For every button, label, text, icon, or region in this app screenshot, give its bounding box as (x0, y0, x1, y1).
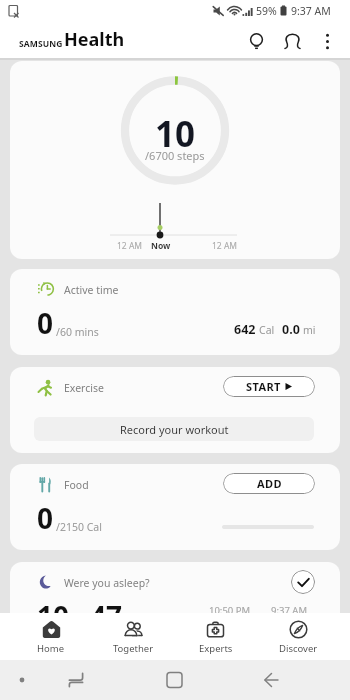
staticText: 10 (155, 110, 196, 158)
staticText: Food (64, 478, 89, 492)
button[interactable]: Discover (257, 613, 340, 660)
staticText: min (125, 618, 145, 632)
button[interactable]: Together (92, 613, 174, 660)
button[interactable]: ADD (223, 473, 315, 494)
button[interactable]: Food (10, 464, 340, 550)
staticText: /60 mins (56, 325, 99, 339)
staticText: Active time (64, 283, 119, 297)
staticText: Together (113, 642, 154, 655)
staticText: 0.0 (282, 321, 300, 338)
staticText: Cal (259, 323, 275, 337)
button[interactable]: START (223, 376, 315, 397)
staticText: /2150 Cal (56, 520, 102, 534)
staticText: Now (151, 240, 171, 252)
staticText: 642 (234, 321, 256, 338)
staticText: SAMSUNG (19, 38, 63, 50)
button[interactable]: Were you asleep? (10, 562, 340, 648)
staticText: 9:37 AM (271, 604, 308, 617)
button[interactable]: Tips (238, 23, 274, 59)
staticText: Record your workout (120, 422, 229, 437)
staticText: 0 (37, 304, 54, 342)
button[interactable]: Confirm sleep (291, 570, 315, 594)
staticText: mi (303, 323, 316, 337)
staticText: 59% (256, 4, 277, 18)
staticText: Home (37, 642, 65, 655)
button[interactable]: Experts (174, 613, 257, 660)
staticText: /6700 steps (145, 148, 205, 163)
button[interactable]: Profile (274, 23, 310, 59)
staticText: 0 (37, 499, 54, 537)
staticText: 10:50 PM (209, 604, 251, 617)
button[interactable]: Active time (10, 269, 340, 355)
button[interactable]: Exercise (10, 367, 340, 453)
staticText: Discover (279, 642, 318, 655)
staticText: START (246, 379, 281, 394)
staticText: Health (64, 27, 125, 52)
button[interactable]: Record your workout (34, 417, 314, 441)
staticText: 12 AM (117, 240, 143, 252)
staticText: ADD (257, 476, 282, 491)
button[interactable]: More options (310, 24, 344, 58)
staticText: Exercise (64, 381, 104, 395)
staticText: 9:37 AM (291, 4, 331, 18)
staticText: Were you asleep? (64, 576, 150, 590)
staticText: 12 AM (212, 240, 238, 252)
staticText: 47 (90, 597, 123, 635)
staticText: Experts (199, 642, 233, 655)
button[interactable]: Home (10, 613, 92, 660)
staticText: 10 (37, 597, 70, 635)
button[interactable]: 10 (10, 61, 340, 259)
